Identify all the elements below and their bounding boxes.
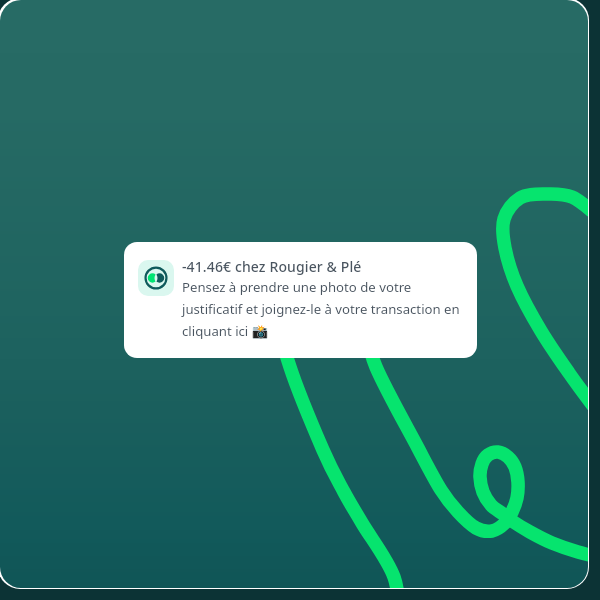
staticText: -41.46€ chez Rougier & Plé bbox=[182, 257, 362, 276]
button[interactable]: -41.46€ chez Rougier & Plé bbox=[124, 242, 477, 358]
staticText: Pensez à prendre une photo de votre just… bbox=[182, 278, 462, 340]
